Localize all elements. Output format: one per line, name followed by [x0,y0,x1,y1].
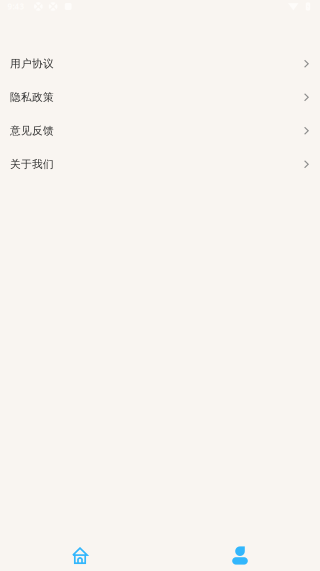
staticText: 关于我们 [10,158,54,171]
staticText: 意见反馈 [10,124,54,137]
button[interactable]: 我的 [160,546,320,565]
button[interactable]: 用户协议 [0,47,320,80]
staticText: 隐私政策 [10,91,54,104]
button[interactable]: 首页 [0,546,160,565]
staticText: 用户协议 [10,57,54,70]
button[interactable]: 隐私政策 [0,80,320,114]
button[interactable]: 关于我们 [0,147,320,181]
button[interactable]: 意见反馈 [0,114,320,147]
